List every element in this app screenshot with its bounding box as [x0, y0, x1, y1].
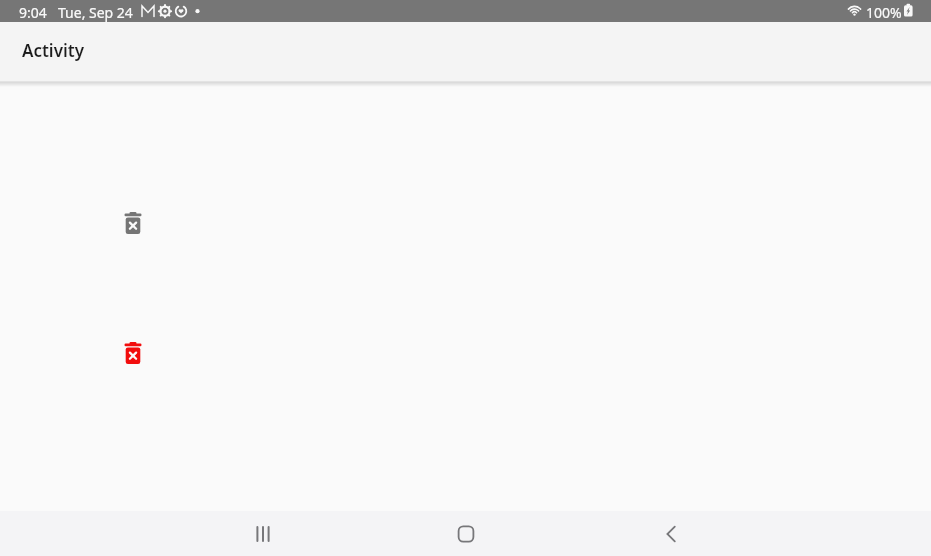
staticText: Tue, Sep 24	[58, 3, 133, 22]
staticText: 9:04	[19, 3, 47, 22]
button[interactable]	[233, 511, 293, 556]
button[interactable]	[116, 206, 150, 240]
button[interactable]	[116, 336, 150, 370]
button[interactable]	[641, 511, 701, 556]
button[interactable]	[436, 511, 496, 556]
staticText: 100%	[866, 3, 902, 22]
staticText: Activity	[22, 39, 84, 62]
